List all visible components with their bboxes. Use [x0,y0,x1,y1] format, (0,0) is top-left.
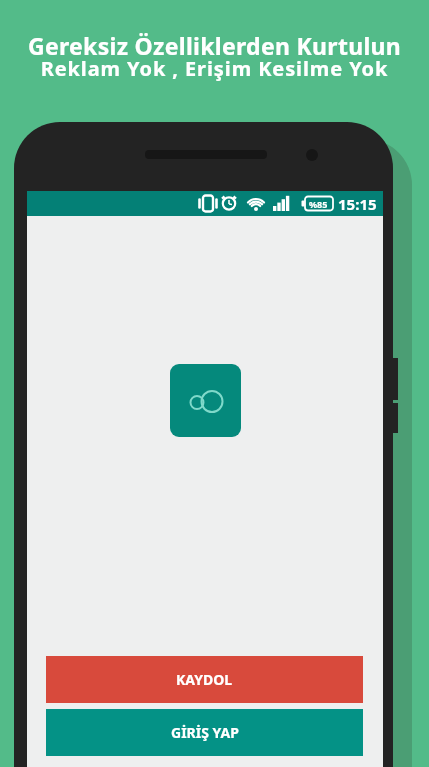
staticText: Reklam Yok , Erişim Kesilme Yok [0,55,429,82]
staticText: 15:15 [338,194,377,214]
staticText: KAYDOL [176,670,233,689]
button[interactable]: KAYDOL [46,656,363,703]
staticText: Gereksiz Özelliklerden Kurtulun [0,30,429,61]
button[interactable]: GİRİŞ YAP [46,709,363,756]
staticText: %85 [309,198,328,210]
staticText: GİRİŞ YAP [171,723,239,742]
